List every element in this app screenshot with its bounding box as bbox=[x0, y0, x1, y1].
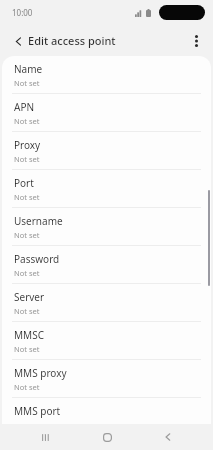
button[interactable]: MMSC bbox=[2, 322, 211, 359]
staticText: Not set bbox=[14, 154, 40, 164]
button[interactable]: Username bbox=[2, 208, 211, 245]
button[interactable]: More options bbox=[185, 30, 207, 52]
staticText: Not set bbox=[14, 268, 40, 278]
staticText: Name bbox=[14, 62, 43, 76]
staticText: Not set bbox=[14, 192, 40, 202]
staticText: Password bbox=[14, 252, 60, 266]
button[interactable]: Recent apps bbox=[28, 424, 62, 450]
button[interactable]: Password bbox=[2, 246, 211, 283]
button[interactable]: MMS port bbox=[2, 398, 211, 424]
button[interactable]: Port bbox=[2, 170, 211, 207]
staticText: Not set bbox=[14, 382, 40, 392]
staticText: Proxy bbox=[14, 138, 41, 152]
button[interactable]: MMS proxy bbox=[2, 360, 211, 397]
staticText: Port bbox=[14, 176, 34, 190]
button[interactable]: Name bbox=[2, 56, 211, 93]
staticText: Not set bbox=[14, 306, 40, 316]
staticText: Not set bbox=[14, 230, 40, 240]
staticText: APN bbox=[14, 100, 35, 114]
staticText: Not set bbox=[14, 78, 40, 88]
staticText: Edit access point bbox=[28, 33, 116, 48]
staticText: Not set bbox=[14, 344, 40, 354]
button[interactable]: APN bbox=[2, 94, 211, 131]
staticText: MMSC bbox=[14, 328, 44, 342]
staticText: MMS proxy bbox=[14, 366, 67, 380]
staticText: MMS port bbox=[14, 404, 61, 418]
staticText: Username bbox=[14, 214, 63, 228]
staticText: 10:00 bbox=[12, 7, 33, 18]
button[interactable]: Back bbox=[151, 424, 185, 450]
button[interactable]: Home bbox=[90, 424, 124, 450]
button[interactable]: Server bbox=[2, 284, 211, 321]
button[interactable]: Navigate up bbox=[8, 31, 28, 51]
staticText: Server bbox=[14, 290, 45, 304]
staticText: Not set bbox=[14, 116, 40, 126]
button[interactable]: Proxy bbox=[2, 132, 211, 169]
